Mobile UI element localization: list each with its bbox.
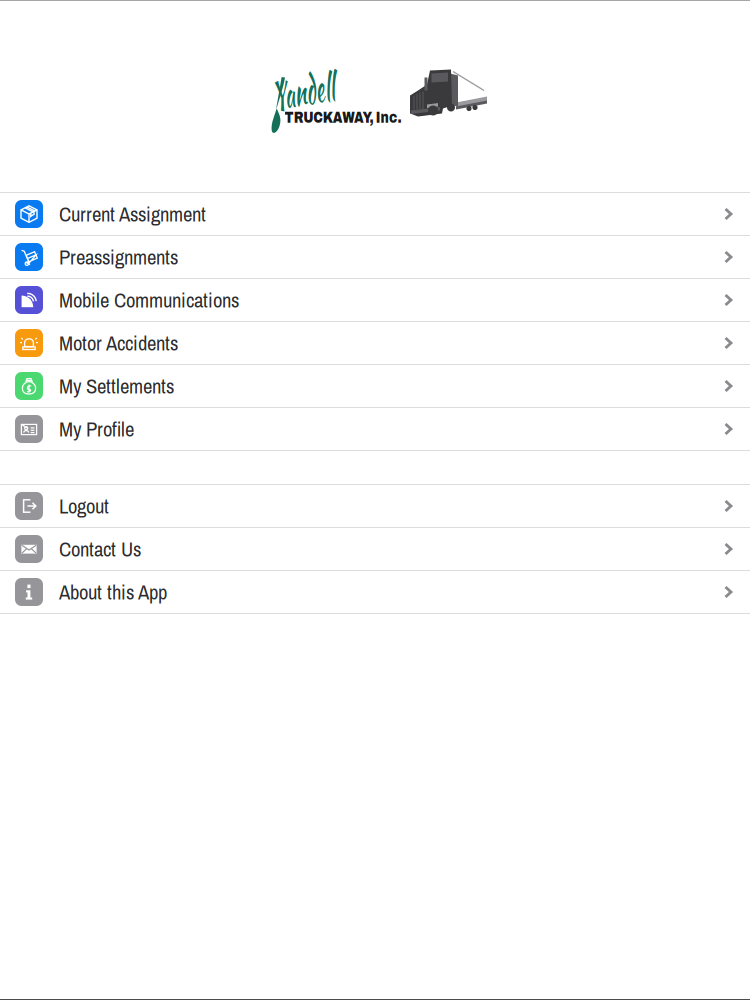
staticText: Yandell [247,63,358,119]
button[interactable]: My Profile [0,408,750,451]
staticText: Motor Accidents [59,329,178,357]
button[interactable]: About this App [0,571,750,614]
button[interactable]: Motor Accidents [0,322,750,365]
button[interactable]: Mobile Communications [0,279,750,322]
button[interactable]: Preassignments [0,236,750,279]
staticText: Current Assignment [59,200,206,228]
button[interactable]: Current Assignment [0,193,750,236]
staticText: My Settlements [59,372,174,400]
staticText: Logout [59,492,109,520]
staticText: Contact Us [59,535,141,563]
staticText: My Profile [59,415,134,443]
staticText: Preassignments [59,243,178,271]
staticText: Mobile Communications [59,286,239,314]
staticText: About this App [59,578,167,606]
button[interactable]: Logout [0,485,750,528]
button[interactable]: My Settlements [0,365,750,408]
button[interactable]: Contact Us [0,528,750,571]
staticText: TRUCKAWAY, Inc. [268,109,418,126]
